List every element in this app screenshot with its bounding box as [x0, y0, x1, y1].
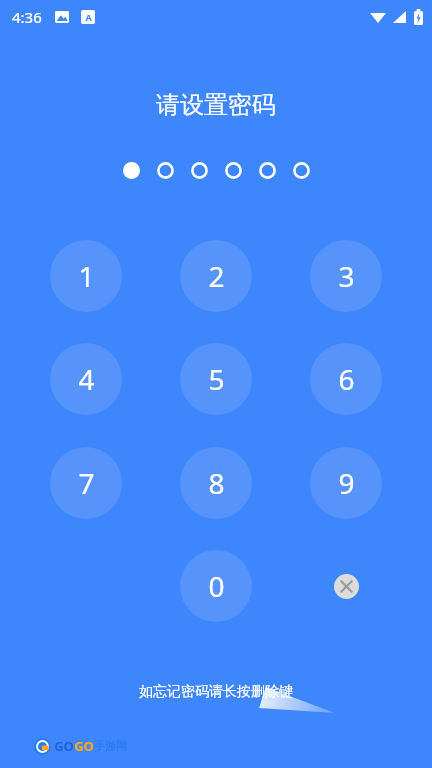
- button[interactable]: 5: [180, 343, 252, 415]
- staticText: 1: [78, 257, 95, 295]
- button[interactable]: 8: [180, 447, 252, 519]
- staticText: 4: [78, 360, 95, 398]
- button[interactable]: 2: [180, 240, 252, 312]
- button[interactable]: 9: [310, 447, 382, 519]
- staticText: 9: [338, 464, 355, 502]
- staticText: 0: [208, 567, 225, 605]
- button[interactable]: 7: [50, 447, 122, 519]
- staticText: 4:36: [12, 7, 42, 27]
- staticText: A: [85, 11, 92, 23]
- staticText: GO: [74, 737, 94, 755]
- staticText: 手游网: [94, 739, 127, 753]
- button[interactable]: Delete: [310, 550, 382, 622]
- staticText: GO: [54, 737, 74, 755]
- staticText: 3: [338, 257, 355, 295]
- button[interactable]: 6: [310, 343, 382, 415]
- staticText: 8: [208, 464, 225, 502]
- button[interactable]: 1: [50, 240, 122, 312]
- button[interactable]: 3: [310, 240, 382, 312]
- staticText: 6: [338, 360, 355, 398]
- staticText: 请设置密码: [0, 90, 432, 120]
- staticText: 2: [208, 257, 225, 295]
- button[interactable]: 4: [50, 343, 122, 415]
- staticText: 如忘记密码请长按删除键: [0, 683, 432, 701]
- button[interactable]: 0: [180, 550, 252, 622]
- staticText: 7: [78, 464, 95, 502]
- staticText: 5: [208, 360, 225, 398]
